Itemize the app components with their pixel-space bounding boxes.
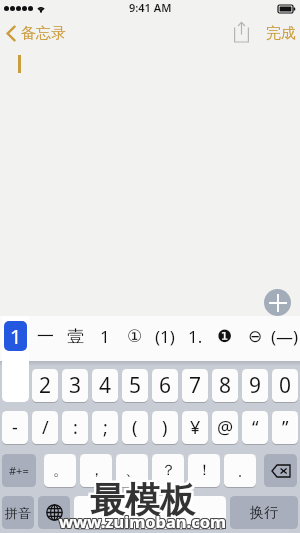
button[interactable]: 一 bbox=[30, 316, 60, 356]
staticText: 3 bbox=[69, 371, 82, 400]
staticText: 最模板 bbox=[88, 480, 193, 524]
button[interactable]: 6 bbox=[152, 369, 178, 402]
staticText: ① bbox=[127, 326, 143, 346]
button[interactable]: ！ bbox=[188, 454, 220, 487]
button[interactable]: 、 bbox=[116, 454, 148, 487]
button[interactable]: Key 1 bbox=[2, 316, 29, 402]
staticText: 6 bbox=[159, 371, 172, 400]
staticText: ” bbox=[282, 415, 289, 440]
staticText: 换行 bbox=[250, 504, 278, 522]
staticText: 最模板 bbox=[92, 476, 197, 520]
staticText: 完成 bbox=[266, 24, 296, 43]
staticText: 备忘录 bbox=[21, 24, 66, 43]
button[interactable]: . bbox=[224, 454, 256, 487]
button[interactable]: 8 bbox=[212, 369, 238, 402]
staticText: 9 bbox=[249, 371, 262, 400]
button[interactable]: 2 bbox=[32, 369, 58, 402]
button[interactable]: : bbox=[62, 411, 88, 444]
button[interactable]: 备忘录 bbox=[5, 24, 66, 43]
staticText: 最模板 bbox=[88, 478, 193, 522]
button[interactable]: (1) bbox=[150, 316, 180, 356]
staticText: www.zuimoban.com bbox=[59, 511, 227, 533]
button[interactable] bbox=[74, 496, 226, 529]
staticText: ( bbox=[132, 415, 138, 440]
staticText: 2 bbox=[39, 371, 52, 400]
button[interactable]: #+= bbox=[2, 454, 36, 487]
staticText: 0 bbox=[279, 371, 292, 400]
button[interactable]: ; bbox=[92, 411, 118, 444]
staticText: www.zuimoban.com bbox=[58, 511, 226, 533]
staticText: 1. bbox=[188, 325, 203, 348]
staticText: : bbox=[73, 415, 78, 440]
staticText: 、 bbox=[125, 461, 140, 480]
button[interactable]: ① bbox=[120, 316, 150, 356]
button[interactable]: ( bbox=[122, 411, 148, 444]
button[interactable]: Delete bbox=[264, 454, 297, 487]
staticText: - bbox=[12, 415, 18, 440]
button[interactable]: ❶ bbox=[210, 316, 240, 356]
button[interactable]: 1 bbox=[90, 316, 120, 356]
button[interactable]: 1 bbox=[4, 321, 27, 351]
staticText: 4 bbox=[99, 371, 112, 400]
button[interactable]: ⊖ bbox=[240, 316, 270, 356]
button[interactable]: @ bbox=[212, 411, 238, 444]
button[interactable]: 换行 bbox=[230, 496, 298, 529]
staticText: ; bbox=[103, 415, 108, 440]
staticText: 最模板 bbox=[92, 478, 197, 522]
staticText: ， bbox=[89, 461, 104, 480]
staticText: ！ bbox=[197, 461, 212, 480]
button[interactable]: 完成 bbox=[266, 24, 296, 43]
staticText: 1 bbox=[100, 325, 110, 348]
button[interactable]: / bbox=[32, 411, 58, 444]
button[interactable]: 3 bbox=[62, 369, 88, 402]
button[interactable]: 4 bbox=[92, 369, 118, 402]
staticText: (1) bbox=[155, 325, 175, 348]
button[interactable]: (—) bbox=[270, 316, 300, 356]
button[interactable]: “ bbox=[242, 411, 268, 444]
button[interactable]: Share bbox=[230, 18, 254, 46]
staticText: (—) bbox=[271, 325, 299, 348]
staticText: 1 bbox=[10, 323, 22, 350]
staticText: 拼音 bbox=[5, 505, 31, 521]
button[interactable]: 5 bbox=[122, 369, 148, 402]
staticText: www.zuimoban.com bbox=[60, 511, 228, 533]
button[interactable]: Switch keyboard bbox=[38, 496, 70, 529]
button[interactable]: 9 bbox=[242, 369, 268, 402]
staticText: www.zuimoban.com bbox=[60, 510, 228, 532]
staticText: “ bbox=[252, 415, 259, 440]
button[interactable]: ” bbox=[272, 411, 298, 444]
staticText: 最模板 bbox=[90, 478, 195, 522]
staticText: / bbox=[42, 415, 49, 440]
staticText: 9:41 AM bbox=[129, 0, 172, 15]
button[interactable]: Add note bbox=[264, 289, 291, 316]
staticText: 最模板 bbox=[88, 476, 193, 520]
staticText: 壹 bbox=[67, 326, 84, 347]
staticText: 一 bbox=[37, 326, 54, 347]
staticText: 。 bbox=[53, 461, 68, 480]
staticText: . bbox=[238, 461, 243, 481]
staticText: #+= bbox=[9, 463, 29, 478]
button[interactable]: ？ bbox=[152, 454, 184, 487]
staticText: ) bbox=[162, 415, 168, 440]
button[interactable]: ¥ bbox=[182, 411, 208, 444]
button[interactable]: 壹 bbox=[60, 316, 90, 356]
staticText: ❶ bbox=[217, 326, 233, 346]
staticText: 7 bbox=[189, 371, 202, 400]
staticText: 5 bbox=[129, 371, 142, 400]
staticText: www.zuimoban.com bbox=[59, 510, 227, 532]
button[interactable]: ) bbox=[152, 411, 178, 444]
staticText: 8 bbox=[219, 371, 232, 400]
button[interactable]: 0 bbox=[272, 369, 298, 402]
staticText: ？ bbox=[161, 461, 176, 480]
staticText: 最模板 bbox=[90, 476, 195, 520]
button[interactable]: - bbox=[2, 411, 28, 444]
button[interactable]: 7 bbox=[182, 369, 208, 402]
button[interactable]: 。 bbox=[44, 454, 76, 487]
button[interactable]: 1 bbox=[0, 369, 30, 402]
staticText: 最模板 bbox=[90, 480, 195, 524]
staticText: www.zuimoban.com bbox=[59, 509, 227, 531]
button[interactable]: ， bbox=[80, 454, 112, 487]
button[interactable]: 1. bbox=[180, 316, 210, 356]
staticText: ⊖ bbox=[248, 326, 263, 346]
button[interactable]: 拼音 bbox=[2, 496, 34, 529]
